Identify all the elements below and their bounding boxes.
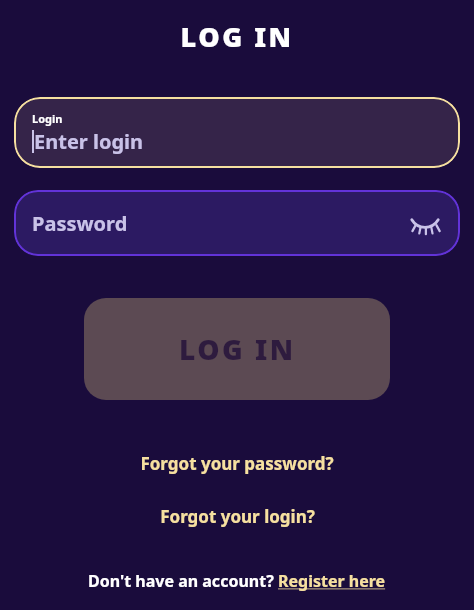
- staticText: Enter login: [34, 128, 144, 155]
- staticText: Don't have an account?: [88, 570, 278, 592]
- staticText: Forgot your password?: [140, 452, 334, 475]
- button[interactable]: Forgot your password?: [0, 448, 474, 479]
- button[interactable]: Login: [14, 97, 460, 168]
- staticText: LOG IN: [179, 330, 296, 368]
- button[interactable]: LOG IN: [84, 298, 390, 400]
- button[interactable]: Register here: [278, 570, 386, 592]
- staticText: Register here: [278, 570, 386, 592]
- button[interactable]: Password: [14, 190, 460, 256]
- staticText: LOG IN: [0, 18, 474, 55]
- staticText: Login: [32, 111, 63, 126]
- button[interactable]: Forgot your login?: [0, 501, 474, 532]
- staticText: Password: [32, 210, 128, 237]
- button[interactable]: Show password: [408, 206, 442, 240]
- staticText: Forgot your login?: [160, 505, 315, 528]
